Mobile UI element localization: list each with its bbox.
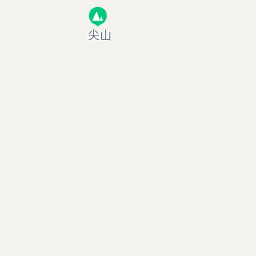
staticText: 尖山 bbox=[87, 28, 111, 43]
staticText: 尖山 bbox=[88, 27, 112, 42]
staticText: 尖山 bbox=[88, 27, 112, 42]
button[interactable]: 尖山 bbox=[78, 4, 120, 42]
staticText: 尖山 bbox=[87, 27, 111, 42]
staticText: 尖山 bbox=[88, 27, 112, 42]
staticText: 尖山 bbox=[87, 27, 111, 42]
staticText: 尖山 bbox=[88, 28, 112, 43]
staticText: 尖山 bbox=[88, 28, 112, 43]
staticText: 尖山 bbox=[88, 27, 112, 42]
